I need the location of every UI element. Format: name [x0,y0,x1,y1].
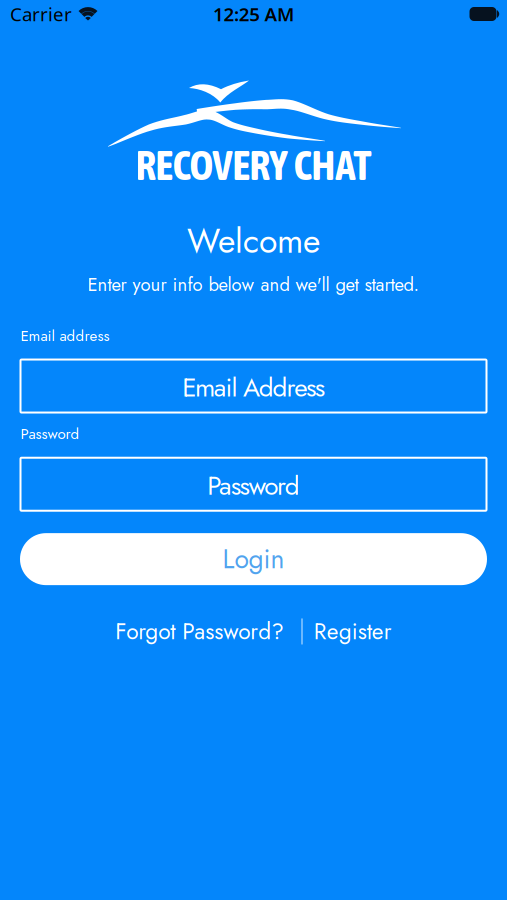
staticText: Carrier [10,2,72,26]
button[interactable]: Login [20,533,487,585]
staticText: Register [314,615,392,648]
button[interactable]: Email Address [20,360,486,413]
button[interactable]: Password [20,458,486,511]
staticText: Password [207,467,300,505]
staticText: Welcome [187,217,320,265]
button[interactable]: Register [314,615,392,648]
staticText: Enter your info below and we'll get star… [87,271,419,298]
staticText: RECOVERY CHAT [135,142,371,189]
staticText: Login [222,540,284,578]
staticText: 12:25 AM [213,2,294,26]
staticText: Password [20,423,79,445]
staticText: Email address [20,325,109,347]
button[interactable]: Forgot Password? [115,615,284,648]
staticText: Email Address [182,369,325,406]
staticText: Forgot Password? [115,615,284,648]
